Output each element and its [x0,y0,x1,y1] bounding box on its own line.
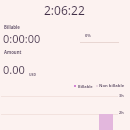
staticText: 2:06:22 [44,2,85,18]
staticText: 0.00 [3,62,25,77]
staticText: 3h [119,93,124,98]
staticText: 0:00:00 [3,31,41,46]
staticText: USD [29,72,36,77]
button[interactable]: Billable [0,83,125,89]
staticText: 2h [119,110,124,115]
staticText: 0% [85,33,91,38]
staticText: Amount [4,49,22,55]
button[interactable]: Amount [3,49,36,77]
button[interactable]: Billable [3,24,41,46]
button[interactable]: 2:06:22 [0,2,129,18]
staticText: Non billable [99,83,125,89]
staticText: Billable [78,84,93,89]
staticText: Billable [4,24,20,30]
